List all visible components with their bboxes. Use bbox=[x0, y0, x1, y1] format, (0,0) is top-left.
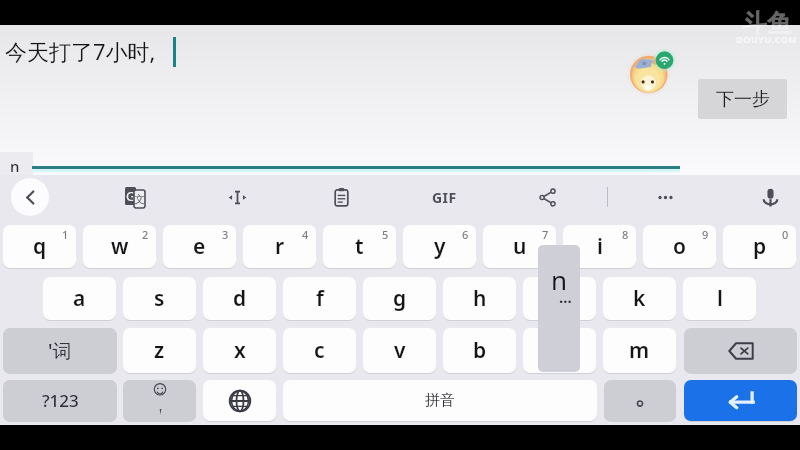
staticText: m bbox=[629, 336, 650, 365]
button[interactable]: j bbox=[523, 277, 596, 320]
staticText: o bbox=[673, 232, 686, 261]
staticText: t bbox=[355, 232, 364, 261]
button[interactable]: Share bbox=[530, 180, 564, 214]
button[interactable]: Profile bbox=[629, 50, 676, 97]
staticText: r bbox=[275, 232, 285, 261]
staticText: 斗鱼 bbox=[742, 8, 792, 39]
staticText: 4 bbox=[302, 227, 309, 242]
button[interactable]: y bbox=[403, 225, 476, 268]
button[interactable]: h bbox=[443, 277, 516, 320]
staticText: g bbox=[393, 284, 407, 313]
button[interactable]: Period bbox=[604, 380, 676, 421]
staticText: 下一步 bbox=[716, 88, 770, 111]
button[interactable]: Translate bbox=[117, 180, 151, 214]
staticText: e bbox=[193, 232, 206, 261]
staticText: w bbox=[111, 232, 129, 261]
staticText: a bbox=[73, 284, 86, 313]
staticText: 0 bbox=[782, 227, 789, 242]
button[interactable]: w bbox=[83, 225, 156, 268]
staticText: d bbox=[233, 284, 247, 313]
staticText: ?123 bbox=[42, 389, 79, 412]
staticText: 文 bbox=[134, 192, 145, 206]
button[interactable]: q bbox=[3, 225, 76, 268]
button[interactable]: n bbox=[523, 328, 596, 373]
staticText: '词 bbox=[48, 338, 72, 364]
button[interactable]: f bbox=[283, 277, 356, 320]
button[interactable]: Change language bbox=[203, 380, 276, 421]
staticText: h bbox=[473, 284, 487, 313]
staticText: x bbox=[234, 336, 246, 365]
staticText: l bbox=[717, 284, 723, 313]
button[interactable]: e bbox=[163, 225, 236, 268]
button[interactable]: 下一步 bbox=[698, 79, 787, 119]
staticText: 3 bbox=[222, 227, 229, 242]
staticText: ... bbox=[559, 287, 572, 307]
button[interactable]: b bbox=[443, 328, 516, 373]
staticText: 2 bbox=[142, 227, 149, 242]
staticText: 5 bbox=[382, 227, 389, 242]
button[interactable]: Enter bbox=[684, 380, 797, 421]
staticText: s bbox=[154, 284, 165, 313]
button[interactable]: a bbox=[43, 277, 116, 320]
staticText: 拼音 bbox=[425, 391, 455, 410]
button[interactable]: x bbox=[203, 328, 276, 373]
staticText: y bbox=[434, 232, 446, 261]
staticText: G bbox=[126, 187, 136, 205]
button[interactable]: u bbox=[483, 225, 556, 268]
staticText: DOUYU.COM bbox=[736, 33, 798, 45]
staticText: q bbox=[33, 232, 47, 261]
staticText: f bbox=[316, 284, 324, 313]
staticText: i bbox=[597, 232, 603, 261]
staticText: 8 bbox=[622, 227, 629, 242]
button[interactable]: More bbox=[648, 180, 682, 214]
button[interactable]: Symbols bbox=[3, 380, 117, 421]
button[interactable]: p bbox=[723, 225, 796, 268]
button[interactable]: s bbox=[123, 277, 196, 320]
button[interactable]: g bbox=[363, 277, 436, 320]
staticText: b bbox=[473, 336, 487, 365]
staticText: n bbox=[10, 156, 20, 176]
staticText: n bbox=[551, 262, 568, 297]
button[interactable]: Backspace bbox=[684, 328, 797, 373]
staticText: p bbox=[753, 232, 767, 261]
button[interactable]: Voice input bbox=[753, 180, 787, 214]
button[interactable]: v bbox=[363, 328, 436, 373]
button[interactable]: z bbox=[123, 328, 196, 373]
button[interactable]: l bbox=[683, 277, 756, 320]
staticText: j bbox=[557, 284, 563, 313]
staticText: k bbox=[633, 284, 646, 313]
button[interactable]: i bbox=[563, 225, 636, 268]
button[interactable]: r bbox=[243, 225, 316, 268]
staticText: u bbox=[513, 232, 527, 261]
staticText: 1 bbox=[62, 227, 69, 242]
button[interactable]: Back bbox=[11, 178, 49, 216]
staticText: 9 bbox=[702, 227, 709, 242]
staticText: 6 bbox=[462, 227, 469, 242]
button[interactable]: m bbox=[603, 328, 676, 373]
button[interactable]: Emoji bbox=[123, 380, 196, 421]
staticText: z bbox=[154, 336, 165, 365]
button[interactable]: GIF bbox=[421, 183, 467, 211]
button[interactable]: c bbox=[283, 328, 356, 373]
button[interactable]: t bbox=[323, 225, 396, 268]
button[interactable]: Clipboard bbox=[324, 180, 358, 214]
button[interactable]: o bbox=[643, 225, 716, 268]
staticText: 今天打了7小时, bbox=[5, 36, 156, 66]
staticText: 7 bbox=[542, 227, 549, 242]
button[interactable]: k bbox=[603, 277, 676, 320]
button[interactable]: Text editing bbox=[220, 180, 254, 214]
staticText: GIF bbox=[432, 188, 457, 207]
staticText: v bbox=[394, 336, 406, 365]
button[interactable]: d bbox=[203, 277, 276, 320]
button[interactable]: Shift / word bbox=[3, 328, 117, 373]
button[interactable]: Space bbox=[283, 380, 597, 421]
staticText: c bbox=[314, 336, 325, 365]
